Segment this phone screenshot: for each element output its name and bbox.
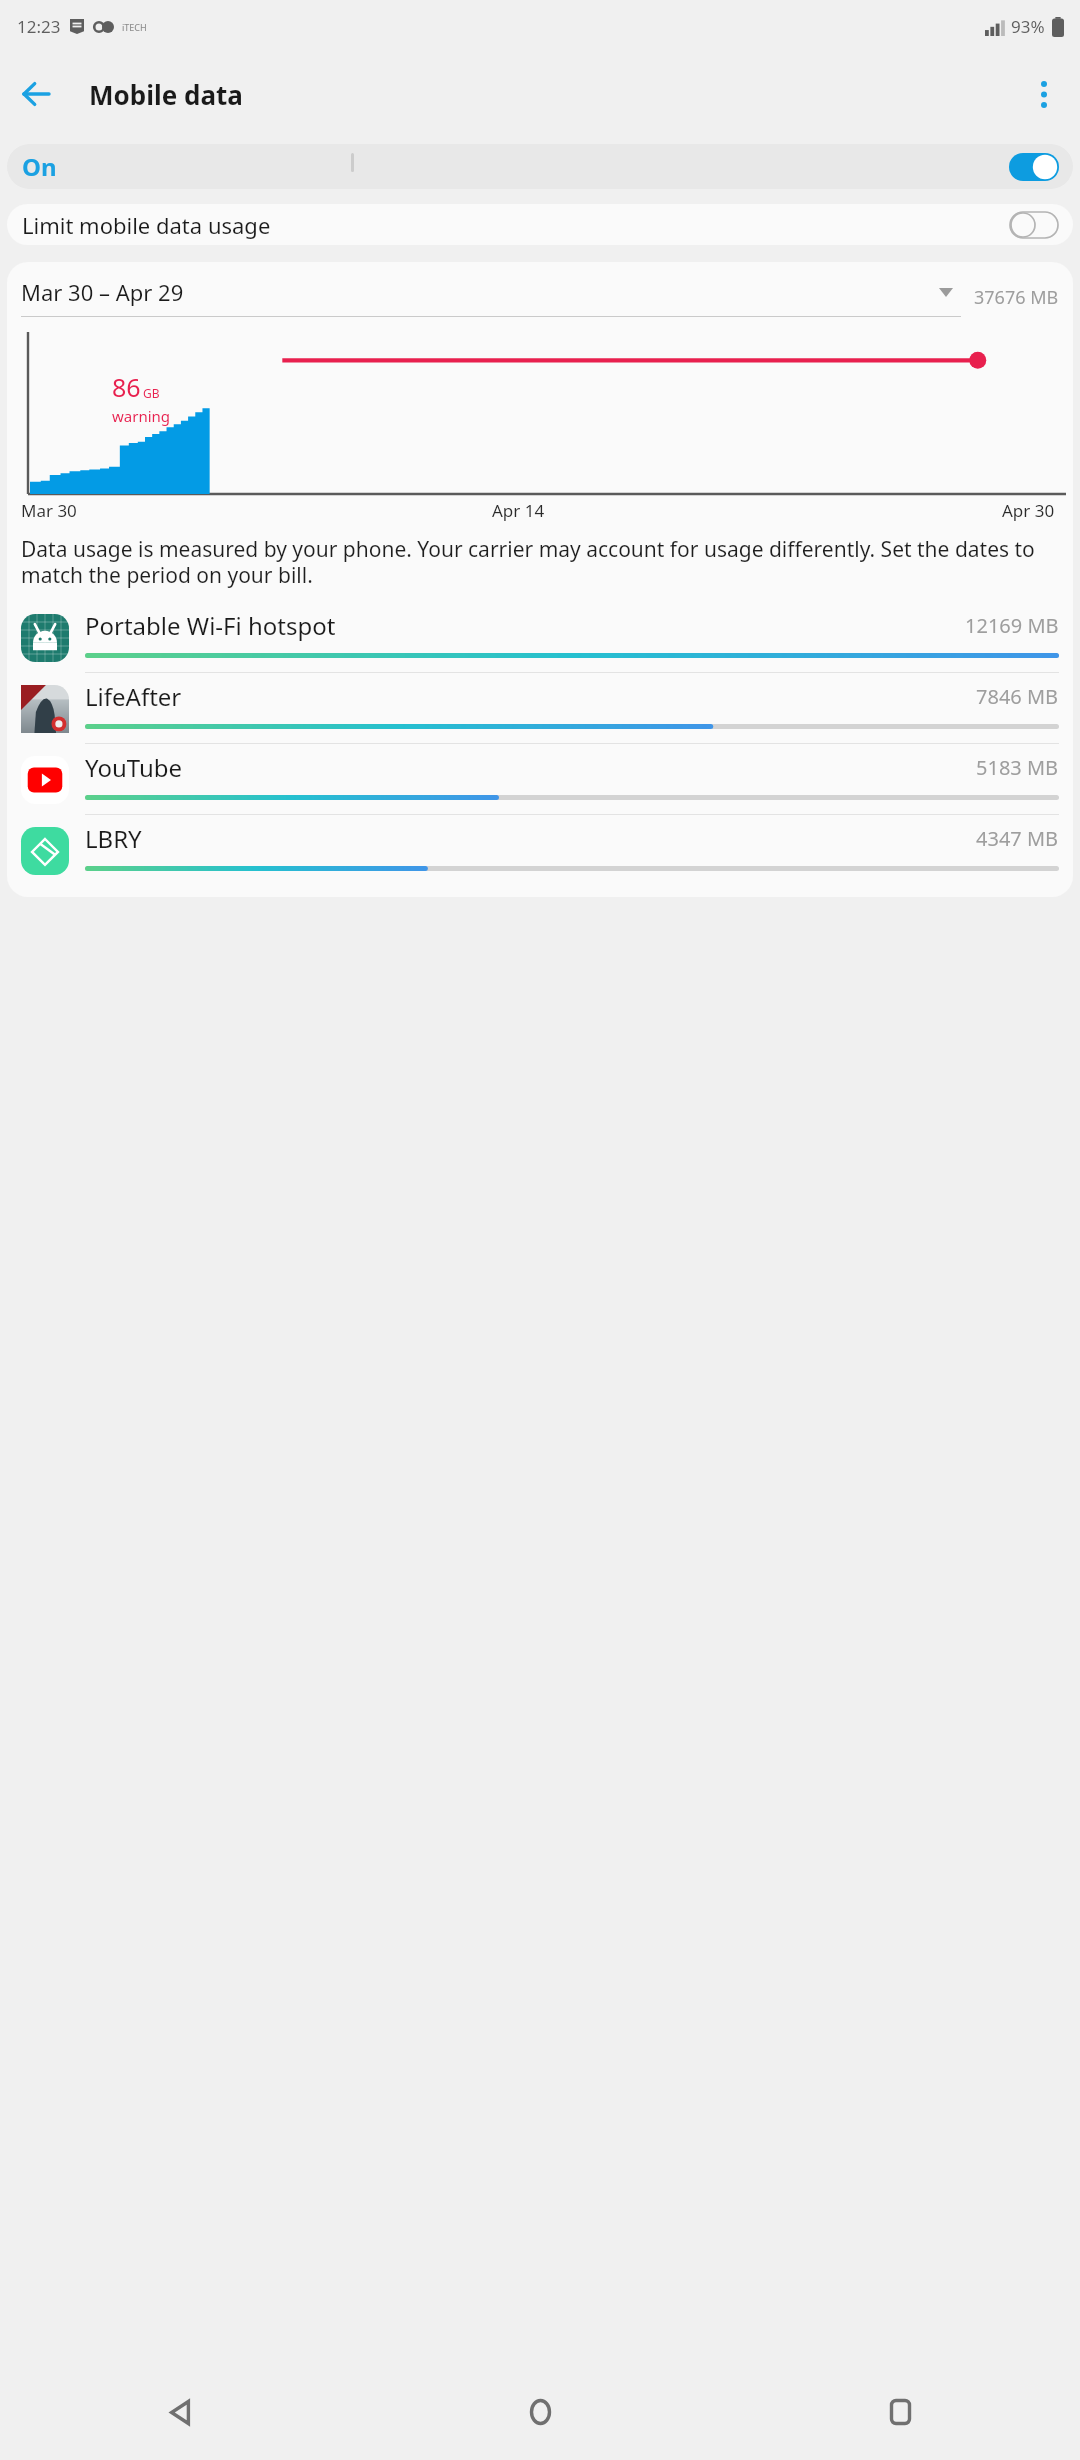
button[interactable]: LBRY xyxy=(7,815,1073,887)
staticText: Mar 30 xyxy=(21,499,77,522)
staticText: Apr 14 xyxy=(492,499,545,522)
staticText: 4347 MB xyxy=(976,825,1059,852)
button[interactable]: Back xyxy=(6,64,66,124)
staticText: Limit mobile data usage xyxy=(22,210,271,240)
staticText: 93% xyxy=(1011,15,1045,38)
staticText: Mar 30 – Apr 29 xyxy=(21,277,184,307)
staticText: LBRY xyxy=(85,822,142,855)
staticText: 12169 MB xyxy=(965,612,1059,639)
staticText: warning xyxy=(112,406,171,426)
button[interactable]: Portable Wi-Fi hotspot xyxy=(7,602,1073,673)
staticText: On xyxy=(22,150,57,183)
button[interactable]: LifeAfter xyxy=(7,673,1073,744)
staticText: YouTube xyxy=(85,751,183,784)
staticText: Mobile data xyxy=(89,77,243,112)
staticText: 37676 MB xyxy=(974,285,1059,310)
staticText: Portable Wi-Fi hotspot xyxy=(85,609,336,642)
staticText: Apr 30 xyxy=(1002,499,1055,522)
staticText: LifeAfter xyxy=(85,680,182,713)
staticText: 12:23 xyxy=(17,15,61,38)
staticText: GB xyxy=(143,385,160,401)
button[interactable]: Recent apps xyxy=(720,2364,1080,2460)
button[interactable]: Limit mobile data usage xyxy=(7,204,1073,245)
button[interactable]: Back xyxy=(0,2364,360,2460)
staticText: 5183 MB xyxy=(976,754,1059,781)
button[interactable]: Home xyxy=(360,2364,720,2460)
staticText: 7846 MB xyxy=(976,683,1059,710)
button[interactable]: On xyxy=(7,144,1073,189)
staticText: iTECH xyxy=(122,21,147,33)
button[interactable]: YouTube xyxy=(7,744,1073,815)
button[interactable]: More options xyxy=(1016,66,1072,122)
button[interactable]: Mar 30 – Apr 29 xyxy=(7,262,1073,317)
staticText: Data usage is measured by your phone. Yo… xyxy=(21,535,1059,590)
staticText: 86 xyxy=(112,370,141,404)
